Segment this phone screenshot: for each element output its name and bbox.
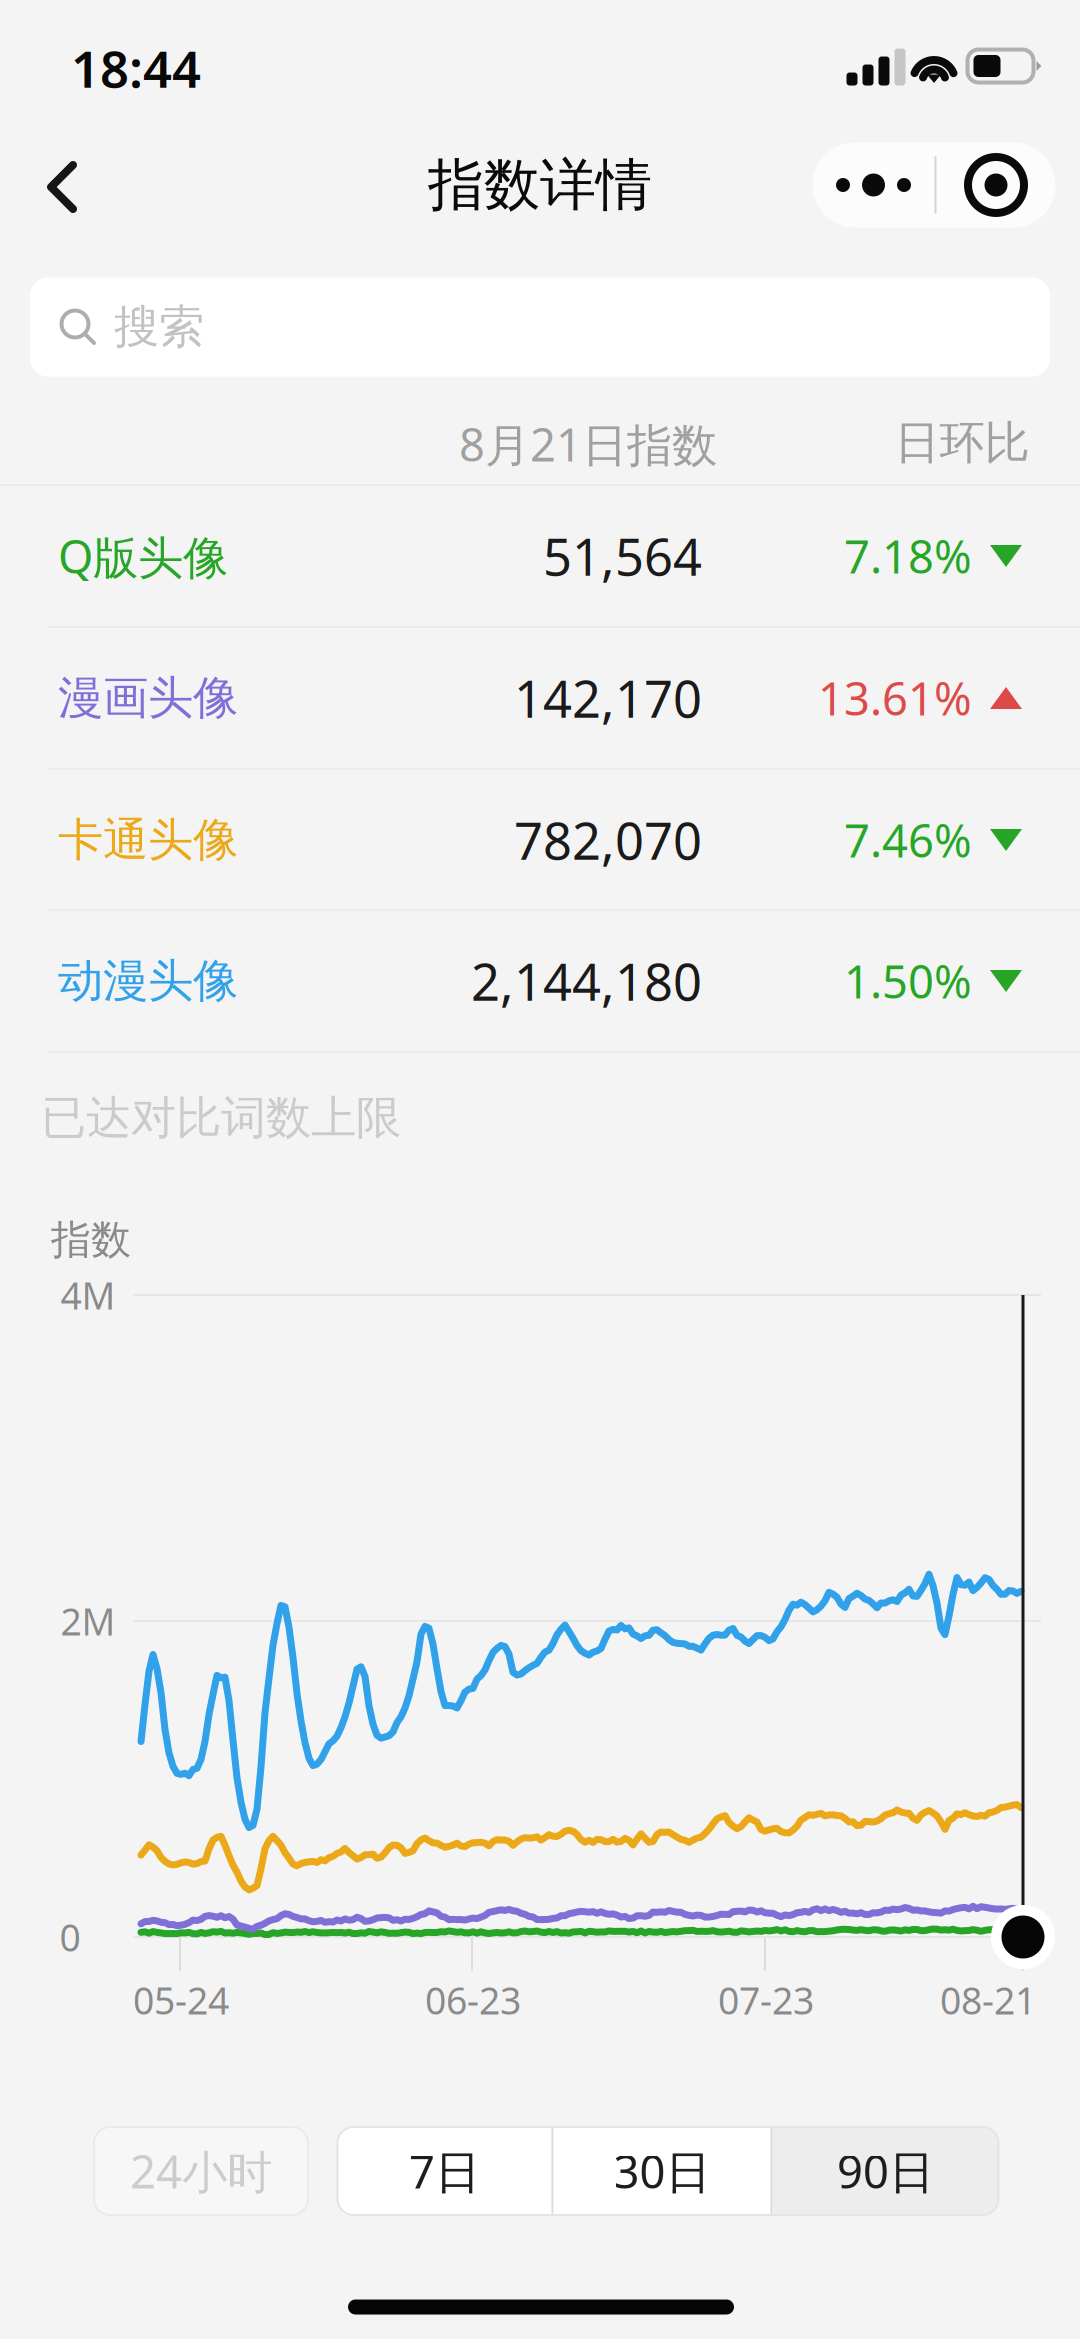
staticText: 07-23 bbox=[718, 1975, 814, 2025]
staticText: 1.50% bbox=[844, 951, 972, 1011]
staticText: 7日 bbox=[409, 2141, 480, 2201]
button[interactable]: Q版头像 bbox=[0, 485, 1080, 626]
staticText: 2M bbox=[60, 1596, 115, 1646]
staticText: 782,070 bbox=[514, 806, 702, 874]
staticText: 指数 bbox=[51, 1215, 131, 1264]
staticText: 卡通头像 bbox=[58, 812, 238, 868]
staticText: 08-21 bbox=[940, 1975, 1036, 2025]
button[interactable]: Close mini program bbox=[936, 142, 1055, 227]
staticText: 2,144,180 bbox=[471, 947, 702, 1015]
staticText: 已达对比词数上限 bbox=[41, 1090, 401, 1146]
staticText: 7.18% bbox=[844, 526, 972, 586]
staticText: 30日 bbox=[613, 2141, 710, 2201]
button[interactable]: 7日 bbox=[337, 2127, 551, 2215]
staticText: 4M bbox=[60, 1270, 115, 1320]
button[interactable]: 漫画头像 bbox=[0, 627, 1080, 768]
button[interactable]: 30日 bbox=[553, 2127, 770, 2215]
staticText: 搜索 bbox=[114, 299, 204, 355]
staticText: Q版头像 bbox=[58, 526, 228, 586]
staticText: 18:44 bbox=[71, 34, 201, 102]
staticText: 漫画头像 bbox=[58, 670, 238, 726]
button[interactable]: 卡通头像 bbox=[0, 769, 1080, 910]
staticText: 动漫头像 bbox=[58, 953, 238, 1009]
button[interactable]: 动漫头像 bbox=[0, 910, 1080, 1051]
staticText: 0 bbox=[59, 1912, 80, 1962]
staticText: 142,170 bbox=[514, 664, 702, 732]
staticText: 05-24 bbox=[133, 1975, 229, 2025]
staticText: 7.46% bbox=[844, 810, 972, 870]
button[interactable]: 搜索 bbox=[30, 277, 1050, 376]
staticText: 51,564 bbox=[543, 522, 702, 590]
button[interactable]: 90日 bbox=[772, 2127, 998, 2215]
staticText: 24小时 bbox=[130, 2141, 272, 2201]
staticText: 06-23 bbox=[425, 1975, 521, 2025]
button[interactable]: Back bbox=[7, 137, 117, 237]
staticText: 日环比 bbox=[894, 415, 1029, 471]
staticText: 8月21日指数 bbox=[459, 414, 717, 474]
button[interactable]: More bbox=[812, 142, 934, 227]
staticText: 指数详情 bbox=[428, 151, 652, 219]
button[interactable]: 24小时 bbox=[94, 2127, 308, 2215]
staticText: 90日 bbox=[837, 2141, 934, 2201]
staticText: 13.61% bbox=[818, 668, 972, 728]
